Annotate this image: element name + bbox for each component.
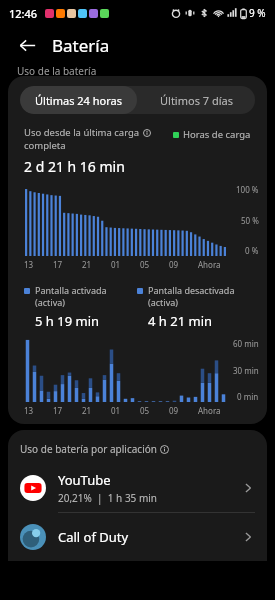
staticText: 2 d 21 h 16 min <box>24 157 125 176</box>
staticText: 5 h 19 min <box>35 312 100 330</box>
staticText: Uso de la batería <box>17 64 97 76</box>
button[interactable]: Últimos 7 días <box>137 86 255 114</box>
staticText: 9 % <box>249 6 266 20</box>
staticText: 20,21% | 1 h 35 min <box>58 491 158 505</box>
staticText: Horas de carga <box>183 128 251 141</box>
staticText: 05 <box>140 405 150 416</box>
staticText: YouTube <box>58 471 111 489</box>
staticText: 30 min <box>233 365 259 376</box>
staticText: 17 <box>53 405 63 416</box>
button[interactable]: Atrás <box>12 30 42 60</box>
staticText: 05 <box>140 259 150 270</box>
staticText: 01 <box>111 259 121 270</box>
staticText: Uso desde la última carga <box>24 126 140 139</box>
staticText: Batería <box>52 34 110 57</box>
staticText: Uso de batería por aplicación <box>20 442 157 456</box>
staticText: 12:46 <box>9 6 38 21</box>
staticText: Pantalla desactivada <box>148 284 235 296</box>
button[interactable]: Call of Duty <box>8 513 267 561</box>
staticText: Ahora <box>198 405 221 416</box>
staticText: Últimas 24 horas <box>35 93 122 108</box>
staticText: 50 % <box>241 215 259 226</box>
staticText: Últimos 7 días <box>160 93 233 108</box>
staticText: 13 <box>24 259 34 270</box>
staticText: 100 % <box>236 184 259 195</box>
staticText: 21 <box>82 405 92 416</box>
button[interactable]: Últimas 24 horas <box>20 86 137 114</box>
staticText: completa <box>24 139 66 152</box>
staticText: 0 min <box>237 391 259 402</box>
staticText: 4 h 21 min <box>148 312 213 330</box>
staticText: (activa) <box>35 296 65 308</box>
staticText: (activa) <box>148 296 178 308</box>
staticText: 09 <box>169 259 179 270</box>
button[interactable]: YouTube <box>8 464 267 512</box>
staticText: 01 <box>111 405 121 416</box>
staticText: 0 % <box>245 245 259 256</box>
staticText: 21 <box>82 259 92 270</box>
staticText: Call of Duty <box>58 528 129 546</box>
staticText: 13 <box>24 405 34 416</box>
staticText: 60 min <box>233 338 259 349</box>
staticText: Ahora <box>198 259 221 270</box>
staticText: Pantalla activada <box>35 284 107 296</box>
staticText: 17 <box>53 259 63 270</box>
staticText: 09 <box>169 405 179 416</box>
